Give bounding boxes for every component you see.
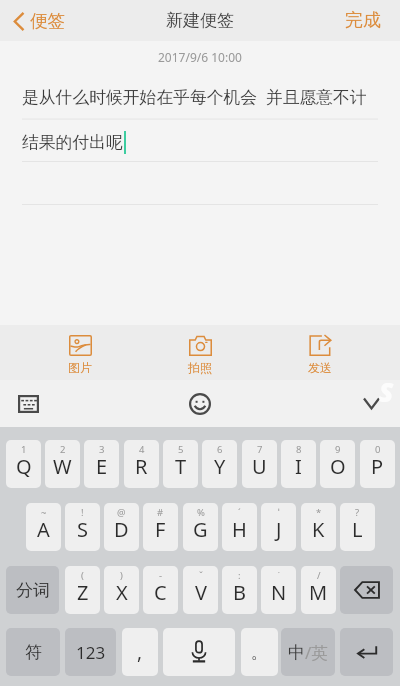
button[interactable]: 2 — [45, 440, 80, 488]
button[interactable]: 8 — [281, 440, 316, 488]
staticText: / — [317, 569, 321, 582]
staticText: X — [116, 579, 128, 606]
staticText: ´ — [238, 506, 241, 519]
staticText: F — [155, 516, 166, 543]
button[interactable]: ˈ — [261, 503, 296, 551]
button[interactable]: 7 — [242, 440, 277, 488]
staticText: ? — [355, 506, 360, 519]
button[interactable]: 拍照 — [170, 328, 230, 379]
button[interactable]: ˇ — [183, 566, 218, 614]
button[interactable]: Enter — [340, 628, 393, 676]
button[interactable]: 完成 — [331, 3, 400, 38]
button[interactable]: Emoji — [181, 385, 219, 423]
staticText: - — [159, 569, 163, 582]
button[interactable]: / — [301, 566, 336, 614]
button[interactable]: - — [143, 566, 178, 614]
staticText: 8 — [296, 443, 302, 456]
staticText: 是从什么时候开始在乎每个机会 并且愿意不计 — [22, 85, 367, 108]
staticText: ˇ — [199, 569, 203, 582]
button[interactable]: Chinese English toggle — [281, 628, 335, 676]
staticText: 结果的付出呢 — [22, 132, 123, 153]
button[interactable]: ´ — [222, 503, 257, 551]
button[interactable]: Voice input — [163, 628, 235, 676]
button[interactable]: Switch keyboard — [10, 387, 47, 421]
staticText: 9 — [335, 443, 341, 456]
button[interactable]: 便签 — [0, 4, 77, 38]
button[interactable]: % — [183, 503, 218, 551]
button[interactable]: 发送 — [290, 328, 350, 379]
button[interactable]: 5 — [163, 440, 198, 488]
staticText: : — [238, 569, 241, 582]
staticText: O — [330, 453, 346, 480]
staticText: L — [352, 516, 363, 543]
button[interactable]: 4 — [124, 440, 159, 488]
staticText: 2017/9/6 10:00 — [158, 49, 242, 65]
button[interactable]: 分词 — [6, 566, 59, 614]
button[interactable]: ? — [340, 503, 375, 551]
staticText: B — [233, 579, 246, 606]
button[interactable]: 3 — [84, 440, 119, 488]
staticText: 1 — [21, 443, 27, 456]
staticText: J — [276, 516, 282, 543]
staticText: 中 — [288, 642, 305, 663]
button[interactable]: 2017/9/6 10:00 — [0, 41, 400, 325]
button[interactable]: , — [122, 628, 158, 676]
button[interactable]: ( — [65, 566, 100, 614]
staticText: D — [114, 516, 129, 543]
staticText: ~ — [41, 506, 47, 519]
staticText: Y — [214, 453, 226, 480]
staticText: H — [232, 516, 247, 543]
staticText: S — [379, 374, 394, 409]
staticText: ˈ — [278, 506, 280, 519]
staticText: K — [312, 516, 325, 543]
staticText: 完成 — [345, 9, 381, 32]
staticText: # — [157, 506, 164, 519]
staticText: 便签 — [30, 10, 65, 32]
button[interactable]: 1 — [6, 440, 41, 488]
staticText: A — [37, 516, 50, 543]
staticText: E — [96, 453, 108, 480]
staticText: I — [295, 453, 302, 480]
staticText: , — [137, 639, 143, 665]
button[interactable]: 123 — [65, 628, 116, 676]
button[interactable]: 符 — [6, 628, 60, 676]
button[interactable]: ~ — [26, 503, 61, 551]
staticText: C — [154, 579, 167, 606]
staticText: T — [175, 453, 187, 480]
staticText: 7 — [257, 443, 263, 456]
button[interactable]: * — [301, 503, 336, 551]
staticText: 新建便签 — [166, 10, 234, 31]
button[interactable]: ˙ — [261, 566, 296, 614]
staticText: W — [53, 453, 72, 480]
staticText: N — [271, 579, 287, 606]
button[interactable]: 0 — [360, 440, 395, 488]
staticText: ! — [81, 506, 84, 519]
button[interactable]: Hide keyboard — [355, 390, 388, 417]
staticText: 3 — [99, 443, 105, 456]
staticText: 6 — [217, 443, 223, 456]
button[interactable]: Backspace — [340, 566, 393, 614]
button[interactable]: 9 — [320, 440, 355, 488]
button[interactable]: # — [143, 503, 178, 551]
staticText: @ — [117, 506, 126, 519]
staticText: 0 — [375, 443, 381, 456]
staticText: ( — [81, 569, 84, 582]
staticText: ) — [120, 569, 123, 582]
button[interactable]: @ — [104, 503, 139, 551]
staticText: 图片 — [68, 360, 92, 375]
staticText: S — [77, 516, 88, 543]
button[interactable]: ! — [65, 503, 100, 551]
button[interactable]: ) — [104, 566, 139, 614]
staticText: 2 — [60, 443, 66, 456]
button[interactable]: 6 — [202, 440, 237, 488]
staticText: 发送 — [308, 360, 332, 375]
staticText: /英 — [305, 641, 329, 664]
staticText: * — [316, 506, 322, 519]
button[interactable]: : — [222, 566, 257, 614]
staticText: 5 — [178, 443, 184, 456]
button[interactable]: 图片 — [50, 328, 110, 379]
staticText: 4 — [139, 443, 145, 456]
staticText: M — [309, 579, 328, 606]
staticText: Z — [77, 579, 89, 606]
button[interactable]: 。 — [241, 628, 278, 676]
